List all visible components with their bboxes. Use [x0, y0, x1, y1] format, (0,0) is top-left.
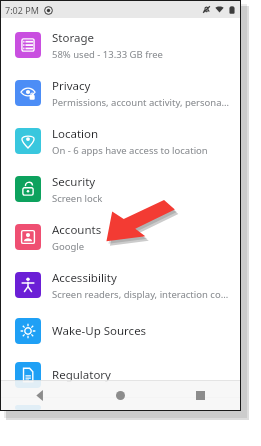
staticText: Google: [52, 240, 85, 253]
button[interactable]: Privacy: [1, 69, 240, 117]
button[interactable]: Security: [1, 165, 240, 213]
staticText: Security: [52, 174, 96, 190]
button[interactable]: Location: [1, 117, 240, 165]
button[interactable]: Home: [80, 380, 160, 410]
staticText: Accessibility: [52, 270, 117, 286]
button[interactable]: Accounts: [1, 213, 240, 261]
button[interactable]: Storage: [1, 21, 240, 69]
button[interactable]: Key Programmer: [1, 398, 240, 410]
staticText: Wake-Up Sources: [52, 323, 147, 339]
staticText: On - 6 apps have access to location: [52, 144, 208, 157]
staticText: Accounts: [52, 222, 102, 238]
button[interactable]: Regulatory: [1, 353, 240, 397]
staticText: Permissions, account activity, personal …: [52, 96, 230, 109]
staticText: Screen readers, display, interaction con…: [52, 288, 230, 301]
staticText: Privacy: [52, 78, 91, 94]
button[interactable]: Wake-Up Sources: [1, 309, 240, 353]
staticText: Location: [52, 126, 99, 142]
button[interactable]: Accessibility: [1, 261, 240, 309]
staticText: Screen lock: [52, 192, 103, 205]
staticText: Storage: [52, 30, 94, 46]
staticText: 58% used - 13.33 GB free: [52, 48, 163, 61]
button[interactable]: Recent apps: [160, 380, 240, 410]
button[interactable]: Back: [1, 380, 80, 410]
staticText: 7:02 PM: [5, 4, 39, 16]
staticText: Regulatory: [52, 367, 111, 383]
